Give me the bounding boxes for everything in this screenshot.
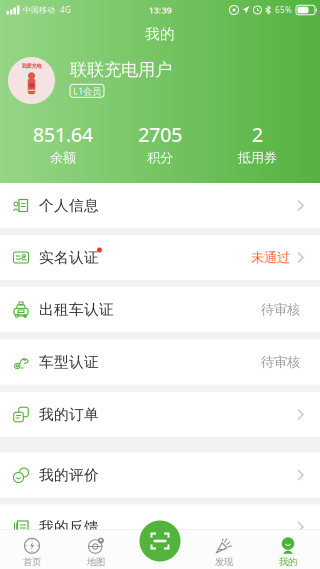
button[interactable]: 我的订单	[0, 392, 320, 437]
staticText: 2705	[138, 121, 182, 148]
staticText: 首页	[23, 556, 41, 568]
button[interactable]: L1会员	[70, 84, 104, 97]
staticText: 余额	[50, 150, 76, 166]
staticText: 4G	[60, 5, 71, 15]
button[interactable]: 发现	[192, 530, 256, 569]
staticText: 地图	[87, 556, 105, 568]
button[interactable]: 个人信息	[0, 183, 320, 228]
button[interactable]: 2	[209, 121, 306, 166]
staticText: 我的反馈	[39, 518, 99, 536]
staticText: 我的评价	[39, 466, 99, 484]
staticText: 实名认证	[39, 248, 99, 266]
button[interactable]: 我的反馈	[0, 504, 320, 549]
staticText: 待审核	[261, 301, 300, 318]
staticText: 出租车认证	[39, 300, 114, 318]
staticText: 65%	[275, 5, 292, 15]
staticText: 抵用券	[238, 150, 277, 166]
staticText: 车型认证	[39, 353, 99, 371]
staticText: 联联充电用户	[70, 59, 172, 80]
staticText: 待审核	[261, 354, 300, 370]
staticText: 13:39	[148, 4, 171, 16]
staticText: 发现	[215, 556, 233, 568]
button[interactable]: 我的	[256, 530, 320, 569]
staticText: 2	[252, 121, 263, 148]
staticText: 我爱充电	[21, 63, 41, 69]
button[interactable]: 扫码充电	[139, 520, 180, 561]
staticText: 中国移动	[23, 5, 55, 15]
staticText: 未通过	[251, 249, 290, 266]
staticText: 851.64	[33, 121, 93, 148]
button[interactable]: 我的评价	[0, 452, 320, 497]
staticText: 我的订单	[39, 405, 99, 423]
staticText: 积分	[147, 150, 173, 166]
staticText: L1会员	[73, 85, 101, 97]
button[interactable]: 851.64	[14, 121, 111, 166]
button[interactable]: 首页	[0, 530, 64, 569]
button[interactable]: 地图	[64, 530, 128, 569]
button[interactable]: 2705	[111, 121, 209, 166]
staticText: 我的	[279, 556, 297, 568]
button[interactable]: 车型认证	[0, 339, 320, 384]
staticText: 个人信息	[39, 196, 99, 214]
staticText: 我的	[145, 25, 175, 43]
button[interactable]: 出租车认证	[0, 287, 320, 332]
button[interactable]: 实名认证	[0, 235, 320, 280]
